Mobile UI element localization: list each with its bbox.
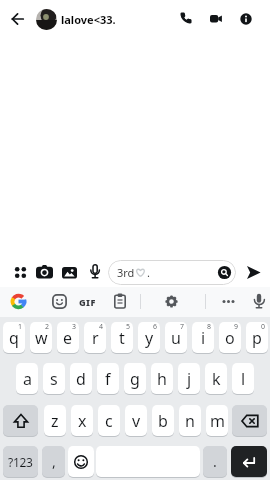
staticText: 3 bbox=[72, 322, 77, 332]
staticText: 2 bbox=[45, 322, 50, 332]
staticText: . bbox=[213, 452, 217, 471]
button[interactable]: g bbox=[124, 363, 146, 394]
button[interactable]: . bbox=[203, 446, 227, 477]
button[interactable]: i bbox=[192, 322, 214, 353]
button[interactable] bbox=[165, 295, 178, 308]
button[interactable]: a bbox=[16, 363, 38, 394]
staticText: w bbox=[35, 327, 48, 349]
staticText: 9 bbox=[234, 322, 239, 332]
button[interactable] bbox=[240, 13, 252, 25]
staticText: 8 bbox=[207, 322, 212, 332]
staticText: q bbox=[9, 327, 19, 349]
button[interactable] bbox=[90, 264, 100, 281]
staticText: 7 bbox=[180, 322, 185, 332]
button[interactable] bbox=[252, 293, 266, 311]
staticText: j bbox=[187, 368, 192, 390]
button[interactable] bbox=[113, 293, 127, 309]
staticText: b bbox=[158, 410, 168, 432]
staticText: p bbox=[252, 327, 262, 349]
button[interactable]: m bbox=[206, 405, 228, 436]
button[interactable]: c bbox=[98, 405, 120, 436]
staticText: 1 bbox=[18, 322, 23, 332]
staticText: e bbox=[63, 327, 73, 349]
button[interactable]: h bbox=[151, 363, 173, 394]
button[interactable]: l bbox=[232, 363, 254, 394]
staticText: a bbox=[23, 368, 32, 390]
staticText: r bbox=[92, 327, 99, 349]
button[interactable]: GIF bbox=[79, 296, 96, 308]
staticText: v bbox=[132, 410, 141, 432]
staticText: 4 bbox=[99, 322, 104, 332]
button[interactable]: , bbox=[42, 446, 65, 477]
staticText: i bbox=[201, 327, 206, 349]
staticText: 0 bbox=[261, 322, 266, 332]
staticText: l bbox=[241, 368, 246, 390]
button[interactable]: j bbox=[178, 363, 200, 394]
button[interactable] bbox=[10, 293, 27, 310]
staticText: f bbox=[105, 368, 111, 390]
staticText: g bbox=[130, 368, 140, 390]
staticText: h bbox=[157, 368, 167, 390]
button[interactable]: z bbox=[44, 405, 66, 436]
button[interactable] bbox=[231, 446, 267, 477]
button[interactable]: 3rd bbox=[108, 260, 236, 285]
button[interactable]: w bbox=[30, 322, 52, 353]
button[interactable]: lalove<33. bbox=[61, 12, 116, 27]
staticText: ?123 bbox=[8, 454, 33, 470]
button[interactable]: f bbox=[97, 363, 119, 394]
button[interactable] bbox=[68, 446, 94, 477]
staticText: c bbox=[105, 410, 113, 432]
button[interactable] bbox=[62, 267, 77, 279]
staticText: o bbox=[225, 327, 235, 349]
button[interactable] bbox=[11, 12, 25, 26]
button[interactable]: x bbox=[71, 405, 93, 436]
staticText: t bbox=[119, 327, 125, 349]
button[interactable] bbox=[222, 299, 235, 304]
button[interactable] bbox=[210, 15, 222, 23]
staticText: 5 bbox=[126, 322, 131, 332]
button[interactable]: r bbox=[84, 322, 106, 353]
staticText: m bbox=[210, 410, 225, 432]
button[interactable] bbox=[36, 265, 53, 279]
button[interactable] bbox=[247, 266, 261, 279]
button[interactable]: q bbox=[3, 322, 25, 353]
button[interactable] bbox=[181, 13, 193, 25]
staticText: , bbox=[52, 452, 56, 471]
staticText: 3rd bbox=[117, 265, 135, 280]
staticText: u bbox=[171, 327, 181, 349]
button[interactable] bbox=[232, 405, 267, 436]
staticText: . bbox=[147, 265, 150, 280]
button[interactable]: b bbox=[152, 405, 174, 436]
button[interactable]: y bbox=[138, 322, 160, 353]
button[interactable]: n bbox=[179, 405, 201, 436]
button[interactable]: u bbox=[165, 322, 187, 353]
button[interactable]: ?123 bbox=[3, 446, 38, 477]
staticText: x bbox=[78, 410, 87, 432]
button[interactable]: o bbox=[219, 322, 241, 353]
button[interactable]: s bbox=[43, 363, 65, 394]
button[interactable] bbox=[36, 9, 57, 30]
staticText: 6 bbox=[153, 322, 158, 332]
button[interactable]: k bbox=[205, 363, 227, 394]
staticText: k bbox=[212, 368, 221, 390]
button[interactable]: e bbox=[57, 322, 79, 353]
button[interactable]: p bbox=[246, 322, 268, 353]
staticText: y bbox=[145, 327, 154, 349]
button[interactable]: v bbox=[125, 405, 147, 436]
button[interactable] bbox=[14, 266, 27, 279]
button[interactable] bbox=[3, 405, 38, 436]
button[interactable]: t bbox=[111, 322, 133, 353]
staticText: n bbox=[185, 410, 195, 432]
staticText: d bbox=[76, 368, 86, 390]
button[interactable] bbox=[52, 294, 67, 309]
staticText: z bbox=[51, 410, 59, 432]
staticText: s bbox=[50, 368, 58, 390]
button[interactable]: d bbox=[70, 363, 92, 394]
